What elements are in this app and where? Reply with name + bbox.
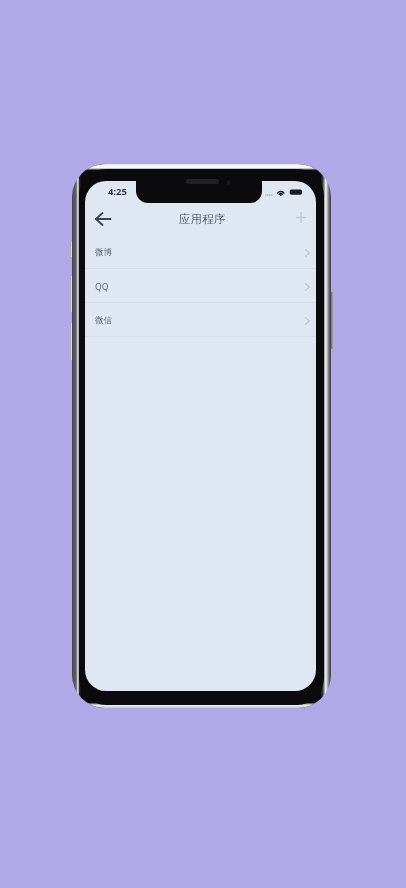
staticText: 4:25 <box>108 185 127 198</box>
button[interactable]: 微信 <box>85 303 316 336</box>
button[interactable]: QQ <box>85 269 316 302</box>
button[interactable]: Add <box>285 201 316 233</box>
staticText: 微博 <box>95 247 112 258</box>
staticText: QQ <box>95 281 109 293</box>
button[interactable]: 微博 <box>85 235 316 268</box>
staticText: 微信 <box>95 315 112 326</box>
button[interactable]: Back <box>86 202 120 235</box>
staticText: 应用程序 <box>179 212 225 226</box>
